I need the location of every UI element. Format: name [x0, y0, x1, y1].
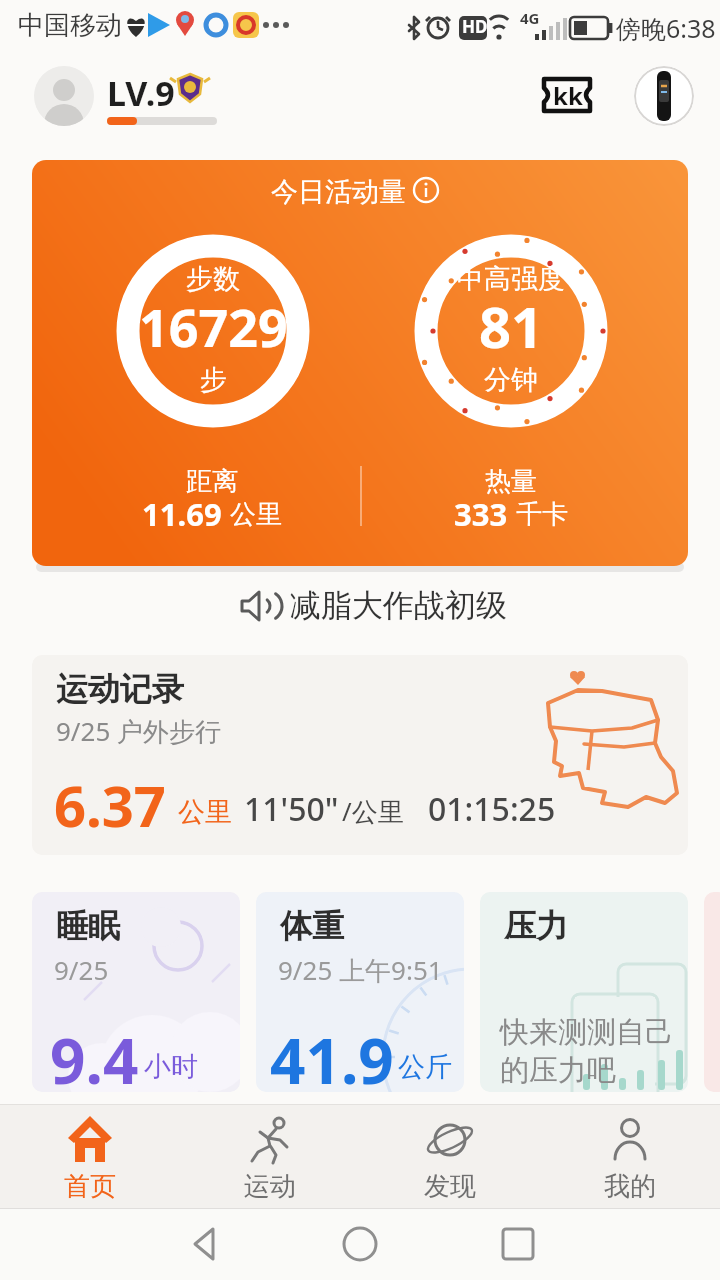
staticText: 11.69: [142, 493, 230, 535]
staticText: 333: [454, 493, 516, 535]
staticText: 16729: [139, 291, 288, 362]
staticText: 公里: [230, 498, 282, 531]
staticText: HD: [462, 15, 488, 38]
staticText: 减脂大作战初级: [290, 586, 507, 625]
button[interactable]: 压力: [480, 892, 688, 1092]
staticText: 热量: [485, 465, 537, 498]
staticText: 中高强度: [457, 262, 565, 296]
staticText: 01:15:25: [428, 787, 556, 831]
button[interactable]: 运动记录: [32, 655, 688, 855]
button[interactable]: 减脂大作战初级: [240, 586, 507, 625]
button[interactable]: [634, 66, 694, 126]
staticText: 9/25 上午9:51: [278, 952, 443, 988]
staticText: 睡眠: [56, 906, 120, 946]
button[interactable]: [478, 1214, 558, 1274]
button[interactable]: 发现: [360, 1108, 540, 1204]
button[interactable]: 首页: [0, 1108, 180, 1204]
staticText: 公里: [178, 795, 232, 829]
staticText: 首页: [64, 1170, 116, 1203]
staticText: 小时: [144, 1050, 198, 1084]
staticText: 千卡: [516, 498, 568, 531]
staticText: 压力: [504, 906, 568, 946]
staticText: 快来测测自己: [500, 1014, 674, 1051]
staticText: 公斤: [398, 1050, 452, 1084]
button[interactable]: [170, 1214, 250, 1274]
staticText: 今日活动量: [271, 175, 406, 209]
staticText: 分钟: [484, 363, 538, 397]
staticText: 9/25: [54, 952, 109, 987]
staticText: 9/25 户外步行: [56, 713, 222, 749]
staticText: 的压力吧: [500, 1052, 616, 1089]
staticText: 发现: [424, 1170, 476, 1203]
staticText: 中国移动: [18, 9, 122, 42]
button[interactable]: 我的: [540, 1108, 720, 1204]
staticText: 41.9: [270, 1018, 394, 1092]
button[interactable]: 运动: [180, 1108, 360, 1204]
staticText: 步: [200, 363, 227, 397]
button[interactable]: 体重: [256, 892, 464, 1092]
staticText: /公里: [342, 793, 404, 829]
staticText: 步数: [186, 262, 240, 296]
staticText: 傍晚6:38: [616, 11, 716, 45]
button[interactable]: [34, 66, 94, 126]
button[interactable]: 睡眠: [32, 892, 240, 1092]
staticText: kk: [553, 79, 583, 112]
staticText: 体重: [280, 906, 344, 946]
staticText: 81: [479, 288, 544, 364]
staticText: 6.37: [54, 767, 166, 843]
staticText: 运动记录: [56, 669, 184, 709]
button[interactable]: [320, 1214, 400, 1274]
staticText: 距离: [186, 465, 238, 498]
staticText: 我的: [604, 1170, 656, 1203]
staticText: 9.4: [50, 1018, 139, 1092]
button[interactable]: 今日活动量: [32, 160, 688, 566]
staticText: 4G: [520, 8, 540, 28]
button[interactable]: kk: [541, 76, 593, 114]
staticText: 运动: [244, 1170, 296, 1203]
staticText: LV.9: [107, 70, 175, 116]
staticText: 11'50": [244, 787, 339, 831]
